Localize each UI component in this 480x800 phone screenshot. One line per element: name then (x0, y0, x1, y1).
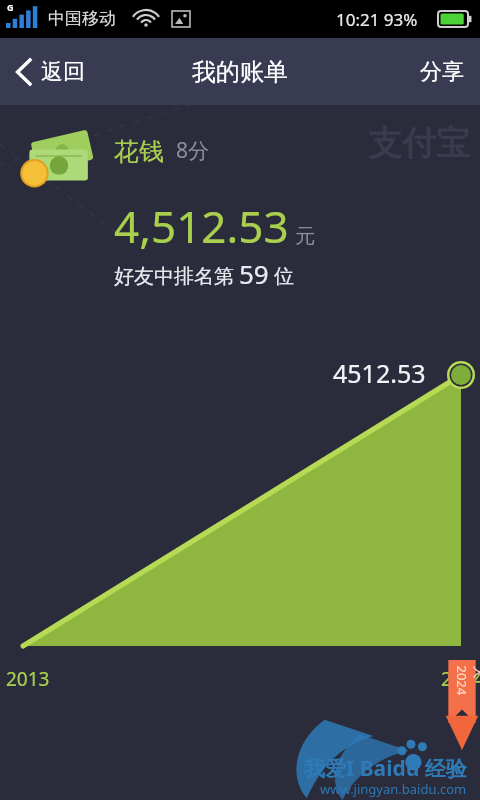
staticText: www.jingyan.baidu.com (320, 780, 467, 798)
staticText: 我爱I Baidu 经验 (304, 754, 467, 783)
staticText: 4,512.53 (114, 196, 289, 256)
staticText: 2013 (6, 666, 50, 692)
staticText: 分享 (420, 58, 464, 86)
staticText: 位 (274, 264, 294, 289)
staticText: 我的账单 (192, 57, 288, 87)
staticText: 元 (295, 224, 315, 249)
staticText: 中国移动 (48, 8, 116, 29)
staticText: 大2024 (452, 665, 480, 701)
staticText: 4512.53 (333, 356, 426, 390)
staticText: 10:21 93% (336, 8, 418, 31)
staticText: 花钱 (114, 136, 164, 167)
staticText: 59 (239, 256, 269, 291)
staticText: G (7, 1, 14, 13)
staticText: 好友中排名第 (114, 264, 234, 289)
staticText: 2014 (441, 666, 480, 692)
button[interactable]: 返回 (16, 38, 85, 105)
button[interactable]: 分享 (420, 38, 464, 105)
staticText: 支付宝 (368, 122, 470, 165)
staticText: 8分 (176, 136, 210, 165)
staticText: 返回 (41, 58, 85, 86)
